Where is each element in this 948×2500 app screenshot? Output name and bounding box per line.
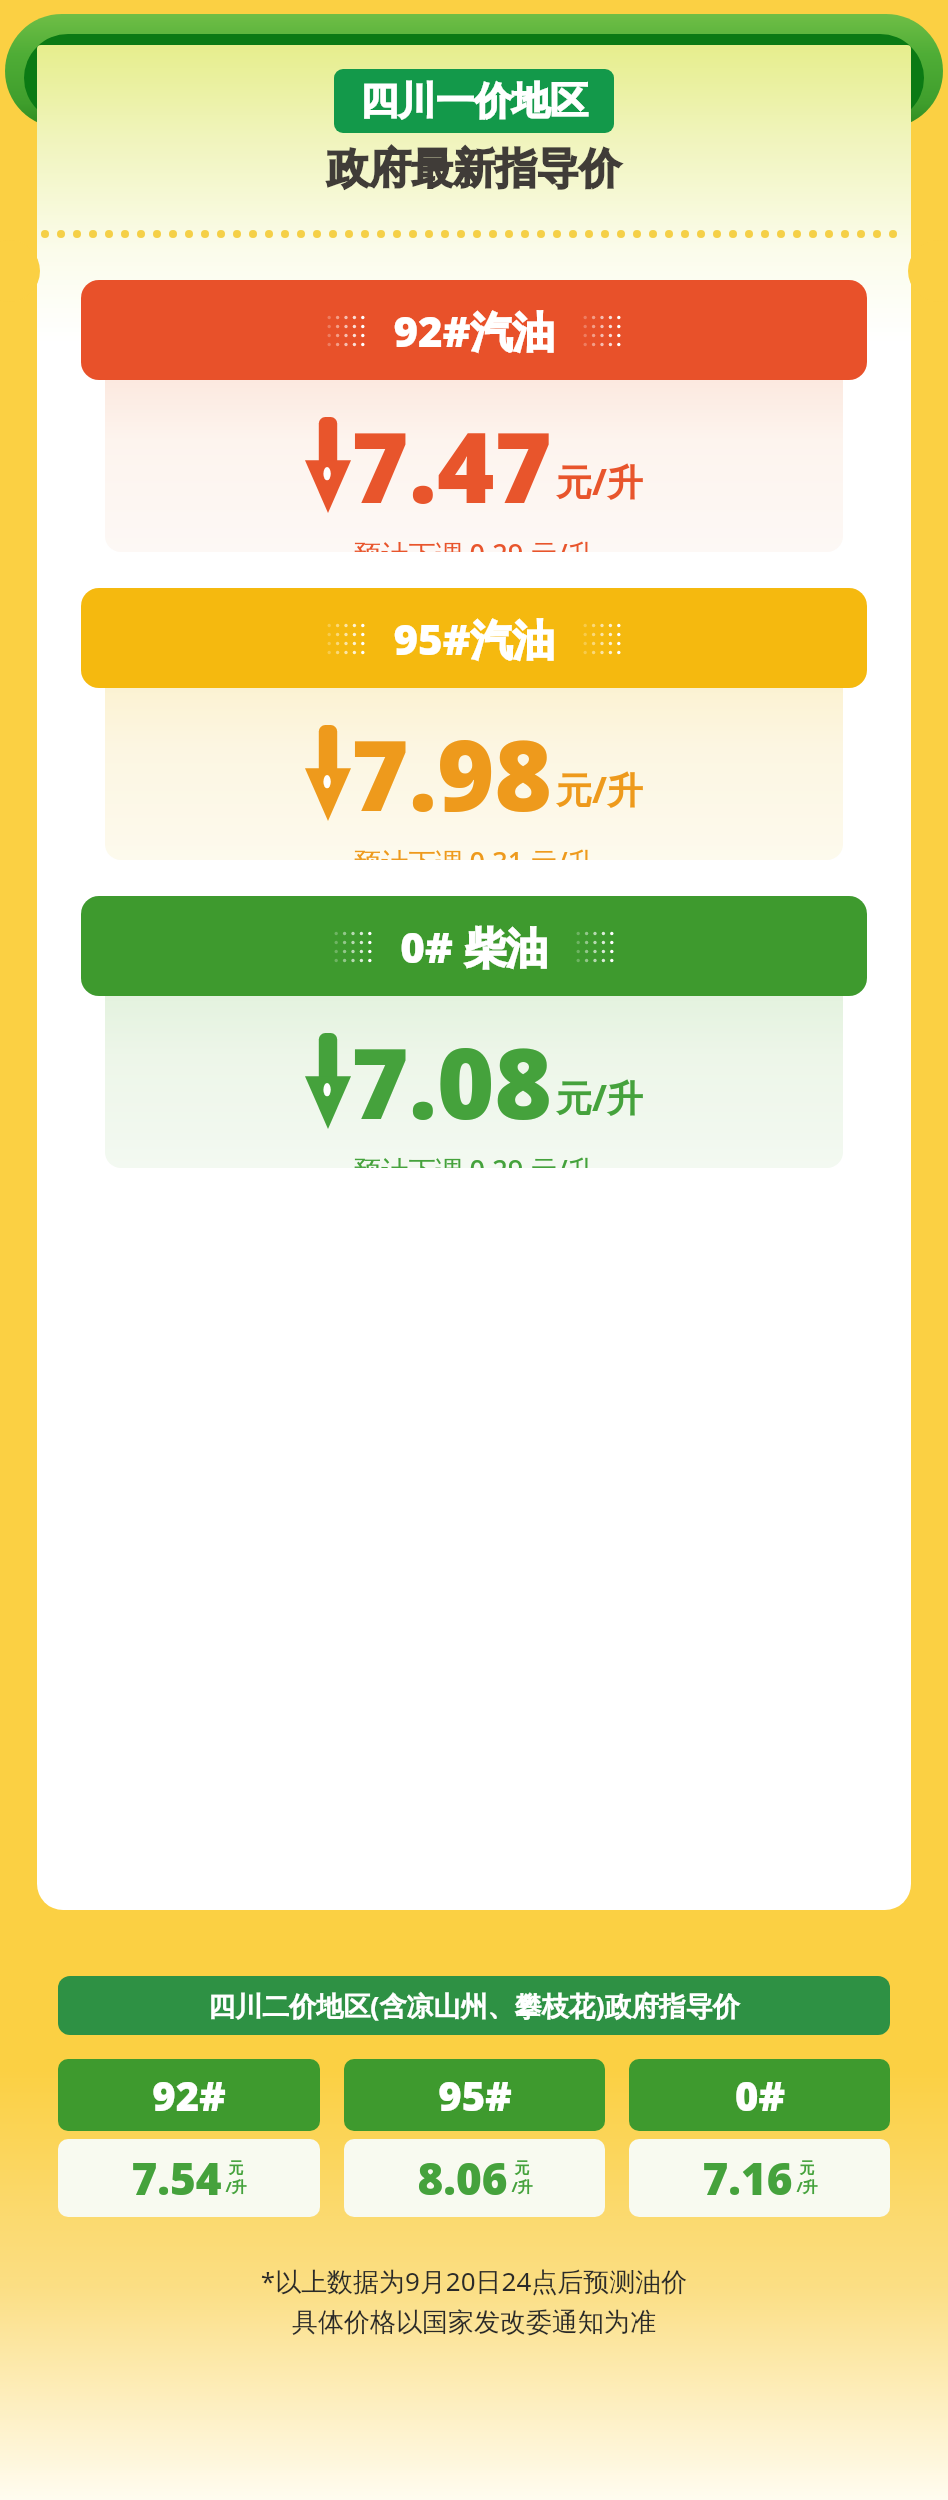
staticText: *以上数据为9月20日24点后预测油价 具体价格以国家发改委通知为准 <box>0 2263 948 2339</box>
staticText: 预计下调 0.29 元/升 <box>354 1151 595 1168</box>
button[interactable]: 四川一价地区 <box>334 69 614 133</box>
staticText: 元 /升 <box>225 2159 247 2197</box>
staticText: 元 /升 <box>511 2159 533 2197</box>
staticText: 预计下调 0.29 元/升 <box>354 535 595 552</box>
staticText: 7.98 <box>351 706 552 839</box>
button[interactable]: 四川二价地区(含凉山州、攀枝花)政府指导价 <box>58 1976 890 2035</box>
button[interactable]: 92#汽油 <box>81 280 867 552</box>
staticText: 预计下调 0.31 元/升 <box>354 843 595 860</box>
staticText: 0# <box>735 2068 785 2122</box>
staticText: 元/升 <box>556 1073 643 1122</box>
button[interactable]: 0# <box>629 2059 890 2217</box>
staticText: 92#汽油 <box>393 302 555 359</box>
button[interactable]: 92# <box>58 2059 320 2217</box>
button[interactable]: 0# 柴油 <box>81 896 867 1168</box>
staticText: 四川一价地区 <box>360 77 588 125</box>
staticText: 7.47 <box>351 398 552 531</box>
staticText: 92# <box>152 2068 226 2122</box>
staticText: 7.16 <box>702 2148 793 2208</box>
staticText: 8.06 <box>417 2148 508 2208</box>
staticText: 95#汽油 <box>393 610 555 667</box>
staticText: 7.08 <box>351 1014 552 1147</box>
staticText: 0# 柴油 <box>400 918 548 975</box>
staticText: 政府最新指导价 <box>327 143 621 196</box>
button[interactable]: 95# <box>344 2059 605 2217</box>
staticText: 元/升 <box>556 457 643 506</box>
staticText: 95# <box>438 2068 512 2122</box>
button[interactable]: 95#汽油 <box>81 588 867 860</box>
staticText: 元 /升 <box>796 2159 818 2197</box>
staticText: 7.54 <box>131 2148 222 2208</box>
staticText: 四川二价地区(含凉山州、攀枝花)政府指导价 <box>58 1987 890 2024</box>
staticText: 元/升 <box>556 765 643 814</box>
